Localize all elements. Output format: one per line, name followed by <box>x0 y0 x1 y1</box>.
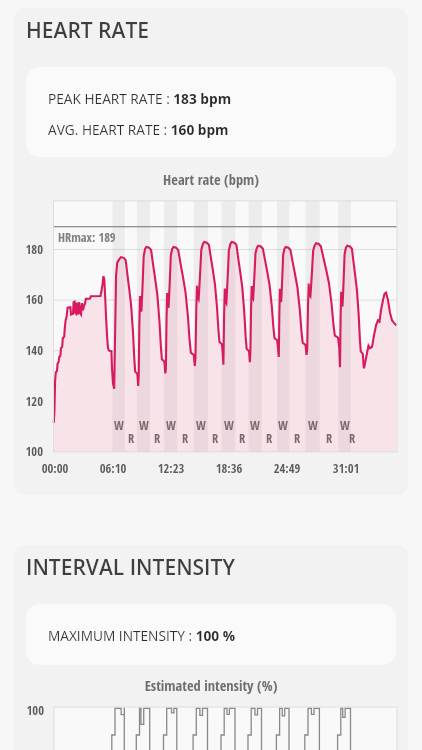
staticText: INTERVAL INTENSITY <box>26 553 235 582</box>
staticText: PEAK HEART RATE : 183 bpm <box>48 89 232 108</box>
staticText: 00:00 <box>25 460 85 477</box>
staticText: 120 <box>0 393 43 410</box>
button[interactable] <box>26 604 396 665</box>
staticText: R <box>343 430 361 447</box>
staticText: R <box>288 430 306 447</box>
staticText: AVG. HEART RATE : 160 bpm <box>48 120 229 139</box>
staticText: W <box>110 417 128 434</box>
staticText: W <box>162 417 180 434</box>
staticText: 100 <box>0 443 43 460</box>
staticText: Heart rate (bpm) <box>0 170 422 190</box>
staticText: Estimated intensity (%) <box>0 676 422 696</box>
staticText: HEART RATE <box>26 16 149 45</box>
staticText: 160 <box>0 291 43 308</box>
staticText: 31:01 <box>316 460 376 477</box>
staticText: R <box>260 430 278 447</box>
staticText: R <box>176 430 194 447</box>
staticText: 24:49 <box>257 460 317 477</box>
staticText: R <box>148 430 166 447</box>
staticText: R <box>320 430 338 447</box>
staticText: W <box>192 417 210 434</box>
staticText: 18:36 <box>199 460 259 477</box>
staticText: R <box>233 430 251 447</box>
staticText: 140 <box>0 342 43 359</box>
staticText: W <box>135 417 153 434</box>
button[interactable] <box>26 67 396 157</box>
staticText: R <box>122 430 140 447</box>
staticText: W <box>246 417 264 434</box>
staticText: HRmax: 189 <box>58 229 116 246</box>
staticText: MAXIMUM INTENSITY : 100 % <box>48 626 236 645</box>
staticText: W <box>274 417 292 434</box>
staticText: W <box>336 417 354 434</box>
staticText: W <box>304 417 322 434</box>
staticText: 06:10 <box>83 460 143 477</box>
staticText: 100 <box>0 702 44 719</box>
staticText: R <box>206 430 224 447</box>
staticText: 180 <box>0 241 43 258</box>
staticText: W <box>220 417 238 434</box>
staticText: 12:23 <box>141 460 201 477</box>
